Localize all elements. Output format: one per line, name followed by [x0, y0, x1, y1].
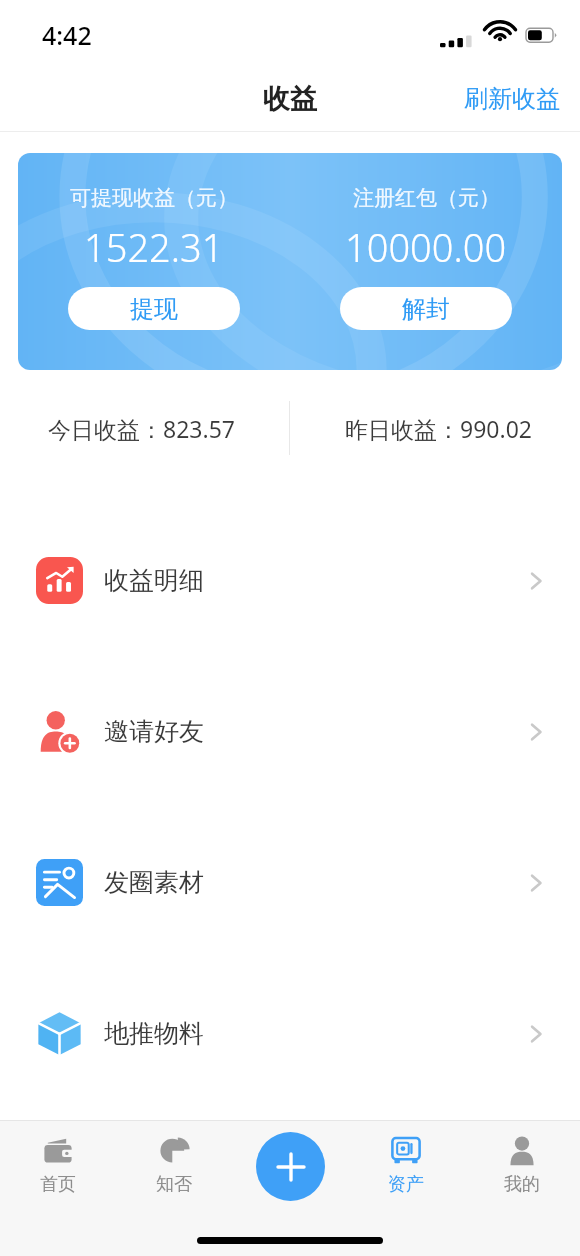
staticText: 刷新收益	[464, 84, 560, 114]
button[interactable]: 发圈素材	[0, 807, 580, 958]
button[interactable]: 邀请好友	[0, 656, 580, 807]
staticText: 地推物料	[104, 1018, 204, 1049]
button[interactable]: 刷新收益	[444, 76, 580, 122]
button[interactable]: 资产	[348, 1121, 464, 1212]
button[interactable]: 地推物料	[0, 958, 580, 1109]
button[interactable]: 提现	[68, 287, 240, 330]
staticText: 收益明细	[104, 565, 204, 596]
staticText: 解封	[402, 294, 450, 324]
staticText: 昨日收益：990.02	[345, 413, 532, 444]
button[interactable]: 我的	[464, 1121, 580, 1212]
button[interactable]: 解封	[340, 287, 512, 330]
staticText: 注册红包（元）	[353, 185, 500, 211]
staticText: 知否	[156, 1173, 192, 1196]
staticText: 首页	[40, 1173, 76, 1196]
button[interactable]: 首页	[0, 1121, 116, 1212]
staticText: 4:42	[42, 18, 92, 52]
staticText: 可提现收益（元）	[70, 185, 238, 211]
staticText: 提现	[130, 294, 178, 324]
staticText: 我的	[504, 1173, 540, 1196]
button[interactable]: 知否	[116, 1121, 232, 1212]
staticText: 资产	[388, 1173, 424, 1196]
button[interactable]: 收益明细	[0, 505, 580, 656]
staticText: 邀请好友	[104, 716, 204, 747]
button[interactable]: Add	[256, 1132, 325, 1201]
staticText: 发圈素材	[104, 867, 204, 898]
staticText: 10000.00	[345, 221, 507, 273]
staticText: 1522.31	[84, 221, 224, 273]
staticText: 收益	[263, 82, 317, 116]
staticText: 今日收益：823.57	[48, 413, 235, 444]
